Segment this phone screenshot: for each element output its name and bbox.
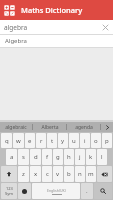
staticText: r	[40, 137, 43, 145]
button[interactable]: Search	[94, 183, 112, 199]
button[interactable]: l	[97, 149, 107, 165]
button[interactable]: 123	[1, 183, 17, 199]
button[interactable]: Backspace	[97, 166, 112, 182]
button[interactable]: Emoji	[18, 183, 31, 199]
button[interactable]: App icon	[3, 4, 16, 17]
button[interactable]: Alberta	[33, 122, 66, 132]
staticText: h	[67, 153, 71, 161]
button[interactable]: t	[47, 133, 57, 148]
staticText: b	[67, 170, 71, 178]
staticText: n	[78, 170, 82, 178]
button[interactable]: algebraic	[0, 122, 32, 132]
button[interactable]: i	[80, 133, 90, 148]
staticText: Algebra	[5, 37, 27, 45]
staticText: q	[5, 137, 9, 145]
staticText: t	[51, 137, 54, 145]
staticText: Maths Dictionary	[21, 5, 83, 15]
button[interactable]: n	[75, 166, 85, 182]
staticText: k	[89, 153, 93, 161]
staticText: l	[101, 153, 103, 161]
staticText: c	[46, 170, 49, 178]
button[interactable]: s	[18, 149, 29, 165]
button[interactable]: b	[64, 166, 74, 182]
staticText: w	[16, 137, 21, 145]
button[interactable]: .	[81, 183, 93, 199]
button[interactable]: q	[1, 133, 12, 148]
button[interactable]: algebra	[0, 20, 113, 34]
staticText: Alberta	[41, 124, 59, 131]
button[interactable]: z	[18, 166, 29, 182]
button[interactable]: Shift	[1, 166, 17, 182]
button[interactable]: h	[64, 149, 74, 165]
staticText: i	[84, 137, 86, 145]
staticText: x	[34, 170, 38, 178]
staticText: y	[61, 137, 65, 145]
button[interactable]: p	[102, 133, 112, 148]
button[interactable]: f	[42, 149, 52, 165]
staticText: z	[22, 170, 25, 178]
staticText: agenda	[75, 124, 93, 131]
staticText: d	[34, 153, 38, 161]
staticText: a	[10, 153, 14, 161]
staticText: o	[94, 137, 98, 145]
button[interactable]: d	[30, 149, 41, 165]
button[interactable]: a	[6, 149, 17, 165]
button[interactable]: u	[69, 133, 79, 148]
staticText: j	[79, 153, 81, 161]
staticText: g	[56, 153, 60, 161]
button[interactable]: Clear query	[101, 23, 110, 32]
button[interactable]: j	[75, 149, 85, 165]
staticText: .	[86, 187, 88, 195]
button[interactable]: More suggestions	[101, 122, 113, 132]
button[interactable]: m	[86, 166, 96, 182]
staticText: u	[72, 137, 76, 145]
staticText: Sym	[5, 191, 13, 196]
button[interactable]: v	[53, 166, 63, 182]
button[interactable]: o	[91, 133, 101, 148]
staticText: 123	[6, 186, 13, 191]
staticText: p	[105, 137, 109, 145]
button[interactable]: Space	[32, 183, 80, 199]
staticText: m	[88, 170, 94, 178]
button[interactable]: r	[36, 133, 46, 148]
staticText: algebra	[4, 23, 101, 32]
staticText: s	[22, 153, 25, 161]
button[interactable]: k	[86, 149, 96, 165]
button[interactable]: Algebra	[0, 35, 113, 47]
staticText: English(UK)	[47, 188, 66, 193]
button[interactable]: w	[13, 133, 24, 148]
staticText: v	[56, 170, 60, 178]
staticText: f	[46, 153, 49, 161]
button[interactable]: e	[25, 133, 35, 148]
staticText: e	[28, 137, 32, 145]
staticText: algebraic	[5, 124, 27, 131]
button[interactable]: y	[58, 133, 68, 148]
button[interactable]: c	[42, 166, 52, 182]
button[interactable]: x	[30, 166, 41, 182]
button[interactable]: g	[53, 149, 63, 165]
button[interactable]: agenda	[67, 122, 100, 132]
